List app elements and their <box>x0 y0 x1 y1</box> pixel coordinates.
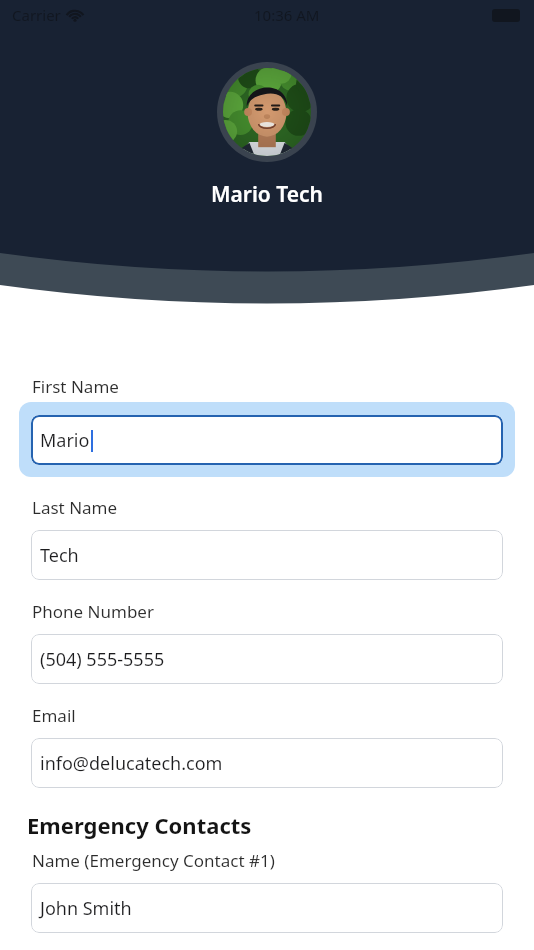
staticText: Carrier <box>12 5 61 25</box>
staticText: Phone Number <box>32 600 154 623</box>
staticText: Emergency Contacts <box>27 810 252 840</box>
staticText: 10:36 AM <box>254 5 320 25</box>
staticText: Email <box>32 704 76 727</box>
staticText: Mario <box>40 428 90 453</box>
button[interactable]: info@delucatech.com <box>31 738 503 788</box>
button[interactable]: (504) 555-5555 <box>31 634 503 684</box>
staticText: First Name <box>32 375 119 398</box>
button[interactable]: Tech <box>31 530 503 580</box>
staticText: (504) 555-5555 <box>40 647 165 672</box>
staticText: Last Name <box>32 496 118 519</box>
button[interactable]: Mario <box>19 402 515 477</box>
button[interactable]: John Smith <box>31 883 503 933</box>
staticText: Tech <box>40 543 79 568</box>
staticText: John Smith <box>40 896 132 921</box>
staticText: info@delucatech.com <box>40 751 223 776</box>
staticText: Mario Tech <box>211 180 323 209</box>
staticText: Name (Emergency Contact #1) <box>32 849 275 872</box>
button[interactable]: Profile photo <box>217 62 317 162</box>
